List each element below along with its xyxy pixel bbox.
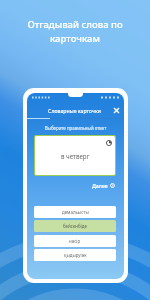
- staticText: демальысты: [62, 209, 89, 215]
- button[interactable]: демальысты: [34, 206, 116, 218]
- staticText: нәсір: [69, 238, 81, 244]
- staticText: в четверг: [61, 152, 90, 160]
- button[interactable]: нәсір: [34, 235, 116, 247]
- button[interactable]: Close: [112, 106, 121, 115]
- staticText: Отгадывай слова по карточкам: [0, 18, 150, 45]
- button[interactable]: қыдыруіәк: [34, 249, 116, 261]
- staticText: Выберите правильный ответ: [27, 125, 124, 131]
- button[interactable]: Далее: [92, 182, 115, 189]
- staticText: бейсенбіде: [63, 223, 87, 229]
- staticText: Далее: [92, 182, 108, 189]
- staticText: қыдыруіәк: [64, 252, 87, 258]
- staticText: Словарные карточки: [37, 107, 112, 114]
- button[interactable]: бейсенбіде: [34, 220, 116, 232]
